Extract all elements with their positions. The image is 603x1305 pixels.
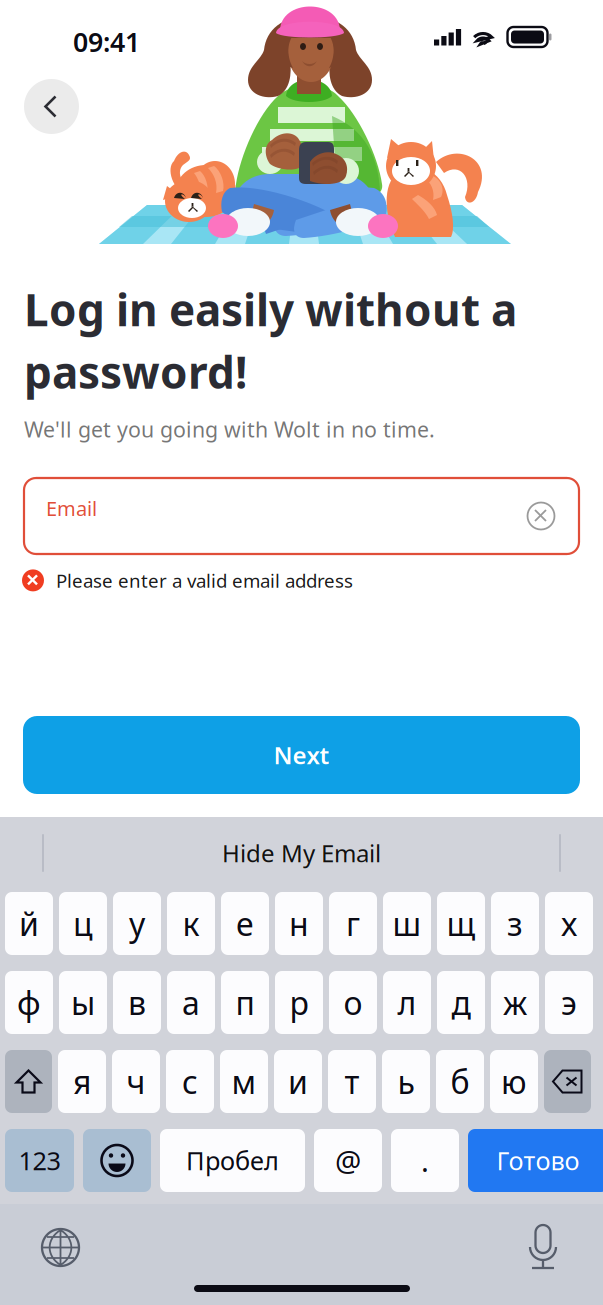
staticText: м <box>231 1060 256 1103</box>
button[interactable]: л <box>383 971 431 1034</box>
staticText: ш <box>392 902 421 945</box>
button[interactable]: ю <box>490 1050 538 1113</box>
staticText: т <box>344 1060 359 1103</box>
button[interactable]: п <box>221 971 269 1034</box>
staticText: х <box>561 902 577 945</box>
staticText: у <box>129 902 145 945</box>
button[interactable]: е <box>221 892 269 955</box>
staticText: @ <box>335 1141 361 1180</box>
button[interactable]: ы <box>59 971 107 1034</box>
button[interactable]: а <box>167 971 215 1034</box>
staticText: 09:41 <box>73 24 140 59</box>
button[interactable]: Backspace <box>544 1050 591 1113</box>
button[interactable]: ц <box>59 892 107 955</box>
staticText: ф <box>17 981 41 1024</box>
button[interactable]: з <box>491 892 539 955</box>
staticText: ь <box>397 1060 414 1103</box>
button[interactable]: Email <box>24 478 579 554</box>
button[interactable]: у <box>113 892 161 955</box>
button[interactable]: к <box>167 892 215 955</box>
staticText: г <box>346 902 360 945</box>
button[interactable]: э <box>545 971 593 1034</box>
staticText: р <box>289 981 308 1024</box>
button[interactable]: ж <box>491 971 539 1034</box>
staticText: щ <box>446 902 475 945</box>
staticText: э <box>561 981 577 1024</box>
staticText: Please enter a valid email address <box>56 568 353 593</box>
button[interactable]: я <box>58 1050 106 1113</box>
button[interactable]: Dictation <box>526 1223 560 1269</box>
button[interactable]: б <box>436 1050 484 1113</box>
staticText: We'll get you going with Wolt in no time… <box>24 415 435 443</box>
staticText: Готово <box>496 1144 579 1177</box>
button[interactable]: р <box>275 971 323 1034</box>
button[interactable]: Next keyboard <box>41 1228 80 1267</box>
button[interactable]: 123 <box>5 1129 74 1192</box>
button[interactable]: х <box>545 892 593 955</box>
staticText: а <box>182 981 200 1024</box>
staticText: п <box>235 981 254 1024</box>
button[interactable]: ч <box>112 1050 160 1113</box>
staticText: ю <box>501 1060 527 1103</box>
button[interactable]: Готово <box>468 1129 603 1192</box>
staticText: Next <box>273 739 329 771</box>
staticText: н <box>289 902 309 945</box>
staticText: Hide My Email <box>222 837 381 869</box>
staticText: Пробел <box>186 1144 279 1177</box>
staticText: й <box>19 902 39 945</box>
button[interactable]: Emoji <box>83 1129 151 1192</box>
staticText: . <box>421 1141 429 1180</box>
staticText: д <box>451 981 470 1024</box>
button[interactable]: с <box>166 1050 214 1113</box>
staticText: ц <box>73 902 93 945</box>
button[interactable]: Пробел <box>160 1129 305 1192</box>
staticText: б <box>450 1060 469 1103</box>
button[interactable]: щ <box>437 892 485 955</box>
staticText: и <box>288 1060 308 1103</box>
staticText: ч <box>126 1060 145 1103</box>
button[interactable]: й <box>5 892 53 955</box>
button[interactable]: Next <box>23 716 580 794</box>
button[interactable]: @ <box>314 1129 382 1192</box>
button[interactable]: т <box>328 1050 376 1113</box>
button[interactable]: н <box>275 892 323 955</box>
staticText: Email <box>46 495 97 522</box>
staticText: з <box>507 902 523 945</box>
staticText: к <box>182 902 199 945</box>
button[interactable]: . <box>391 1129 459 1192</box>
button[interactable]: и <box>274 1050 322 1113</box>
button[interactable]: Back <box>24 79 79 134</box>
button[interactable]: г <box>329 892 377 955</box>
staticText: о <box>343 981 362 1024</box>
staticText: ж <box>503 981 527 1024</box>
staticText: в <box>128 981 146 1024</box>
button[interactable]: о <box>329 971 377 1034</box>
button[interactable]: м <box>220 1050 268 1113</box>
button[interactable]: в <box>113 971 161 1034</box>
button[interactable]: ь <box>382 1050 430 1113</box>
staticText: я <box>73 1060 91 1103</box>
button[interactable]: Shift <box>5 1050 52 1113</box>
staticText: л <box>397 981 416 1024</box>
button[interactable]: ф <box>5 971 53 1034</box>
button[interactable]: ш <box>383 892 431 955</box>
staticText: е <box>236 902 254 945</box>
button[interactable]: д <box>437 971 485 1034</box>
staticText: Log in easily without a password! <box>24 280 517 401</box>
staticText: с <box>182 1060 198 1103</box>
staticText: ы <box>71 981 95 1024</box>
staticText: 123 <box>18 1144 60 1177</box>
